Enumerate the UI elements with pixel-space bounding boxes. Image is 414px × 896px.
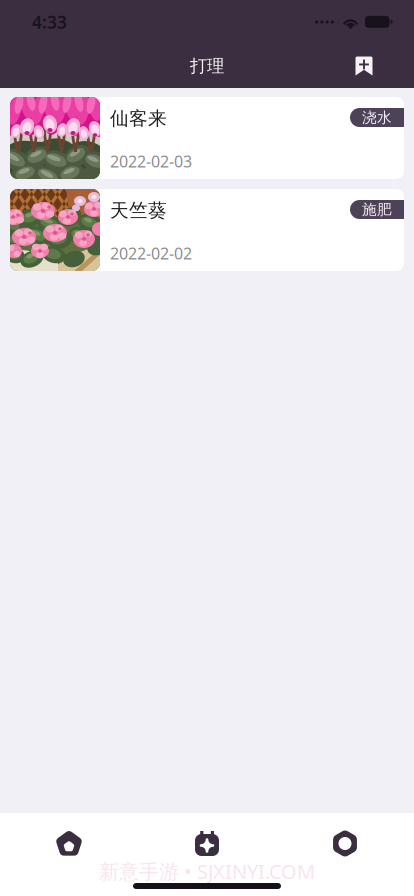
button[interactable]: Home — [0, 813, 138, 868]
button[interactable]: Care — [138, 813, 276, 868]
staticText: 新意手游 • SJXINYI.COM — [99, 858, 315, 885]
button[interactable]: Settings — [276, 813, 414, 868]
staticText: 2022-02-02 — [110, 243, 192, 264]
staticText: 施肥 — [362, 200, 392, 218]
button[interactable]: 天竺葵 — [10, 189, 404, 271]
staticText: 打理 — [190, 55, 224, 77]
staticText: 天竺葵 — [110, 199, 167, 222]
button[interactable]: 仙客来 — [10, 97, 404, 179]
button[interactable]: Add plant — [342, 44, 386, 88]
staticText: 2022-02-03 — [110, 151, 192, 172]
staticText: 仙客来 — [110, 107, 167, 130]
staticText: 浇水 — [362, 108, 392, 126]
staticText: 4:33 — [32, 10, 67, 33]
